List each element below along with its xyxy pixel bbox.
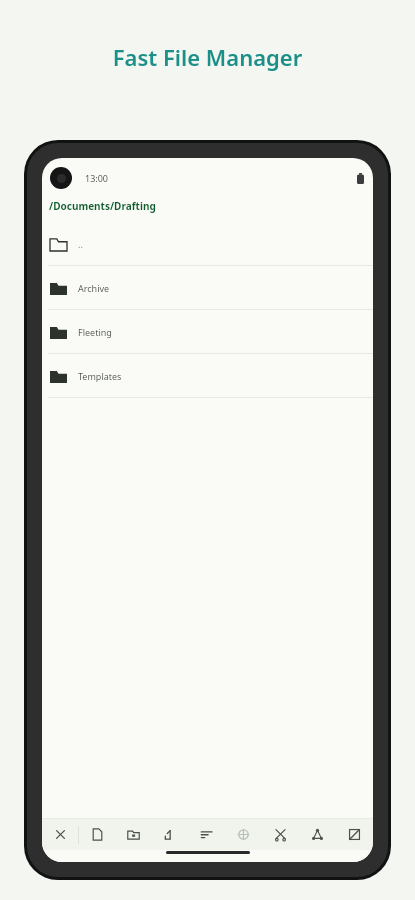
button[interactable]: New file [79, 819, 115, 850]
staticText: /Documents/Drafting [49, 199, 156, 213]
staticText: Fast File Manager [0, 42, 415, 72]
button[interactable]: Sort [188, 819, 225, 850]
staticText: Archive [78, 282, 110, 294]
button[interactable]: Hide [336, 819, 373, 850]
staticText: Templates [78, 370, 122, 382]
button[interactable]: Fleeting [42, 310, 373, 353]
button[interactable]: Upload [151, 819, 188, 850]
button[interactable]: .. [42, 222, 373, 265]
staticText: 13:00 [85, 172, 109, 184]
button[interactable]: New folder [115, 819, 151, 850]
button[interactable]: Share [299, 819, 336, 850]
staticText: .. [78, 238, 83, 250]
staticText: Fleeting [78, 326, 112, 338]
button[interactable]: Templates [42, 354, 373, 397]
button[interactable]: Refresh [225, 819, 262, 850]
button[interactable]: Close [42, 819, 78, 850]
button[interactable]: Cut [262, 819, 299, 850]
button[interactable]: Archive [42, 266, 373, 309]
